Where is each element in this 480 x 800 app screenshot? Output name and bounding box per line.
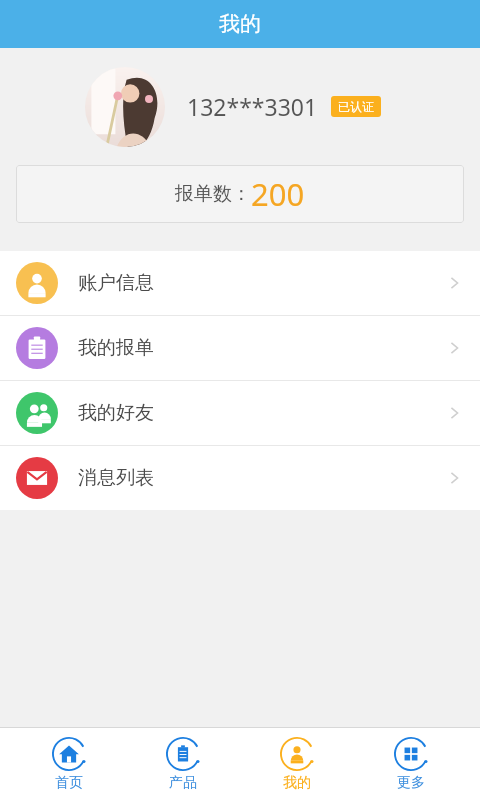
staticText: 我的 — [283, 774, 311, 792]
staticText: 132***3301 — [187, 91, 318, 122]
button[interactable]: 报单数： — [16, 165, 464, 223]
staticText: 产品 — [169, 774, 197, 792]
button[interactable]: 产品 — [138, 733, 228, 796]
staticText: 更多 — [397, 774, 425, 792]
button[interactable]: 更多 — [366, 733, 456, 796]
button[interactable]: 首页 — [24, 733, 114, 796]
button[interactable]: 我的好友 — [0, 381, 480, 445]
button[interactable]: Profile photo — [85, 67, 165, 147]
staticText: 我的 — [219, 11, 261, 37]
button[interactable]: 已认证 — [331, 96, 381, 117]
button[interactable]: 我的 — [252, 733, 342, 796]
staticText: 报单数： — [175, 182, 251, 206]
staticText: 已认证 — [338, 99, 374, 114]
staticText: 我的报单 — [78, 336, 154, 360]
button[interactable]: 账户信息 — [0, 251, 480, 315]
button[interactable]: 消息列表 — [0, 446, 480, 510]
staticText: 账户信息 — [78, 271, 154, 295]
staticText: 首页 — [55, 774, 83, 792]
button[interactable]: 我的报单 — [0, 316, 480, 380]
staticText: 消息列表 — [78, 466, 154, 490]
staticText: 200 — [251, 173, 305, 215]
staticText: 我的好友 — [78, 401, 154, 425]
